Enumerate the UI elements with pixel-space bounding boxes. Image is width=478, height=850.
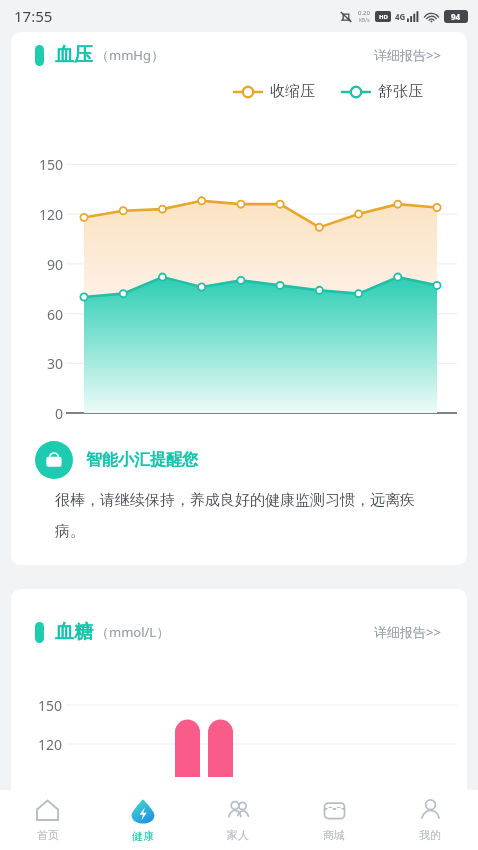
staticText: 很棒，请继续保持，养成良好的健康监测习惯，远离疾病。 [55,491,439,541]
staticText: （mmol/L） [96,623,170,641]
staticText: 详细报告>> [374,46,441,64]
staticText: 120 [38,735,63,754]
button[interactable]: 我的 [382,790,478,850]
button[interactable]: 详细报告>> [370,619,445,645]
staticText: 家人 [227,828,249,842]
staticText: KB/s [359,17,370,24]
button[interactable]: 商城 [286,790,382,850]
staticText: 0.20 [358,9,370,17]
button[interactable]: 首页 [0,790,95,850]
staticText: HD [379,13,388,21]
staticText: 商城 [323,828,345,842]
button[interactable]: 详细报告>> [370,42,445,68]
button[interactable]: 家人 [190,790,286,850]
staticText: （mmHg） [96,46,164,64]
staticText: 150 [38,696,63,715]
staticText: 30 [46,354,63,373]
staticText: 血糖 [55,620,93,644]
staticText: 智能小汇提醒您 [86,450,198,470]
staticText: 健康 [132,829,154,843]
staticText: 首页 [37,828,59,842]
other: 首页 [35,798,60,823]
staticText: 120 [38,205,63,224]
staticText: 详细报告>> [374,623,441,641]
staticText: 4G [395,11,406,22]
other: 家人 [226,798,251,823]
staticText: 血压 [55,43,93,67]
staticText: 94 [451,11,461,22]
staticText: 舒张压 [378,82,423,101]
other: 商城 [322,798,347,823]
button[interactable]: 健康 [95,790,190,850]
staticText: 0 [54,404,63,423]
staticText: 90 [46,255,63,274]
staticText: 150 [38,155,63,174]
other: 健康 [130,798,156,824]
staticText: 我的 [419,828,441,842]
staticText: 收缩压 [270,82,315,101]
other: 我的 [418,798,443,823]
staticText: 17:55 [14,6,53,26]
staticText: 60 [46,305,63,324]
